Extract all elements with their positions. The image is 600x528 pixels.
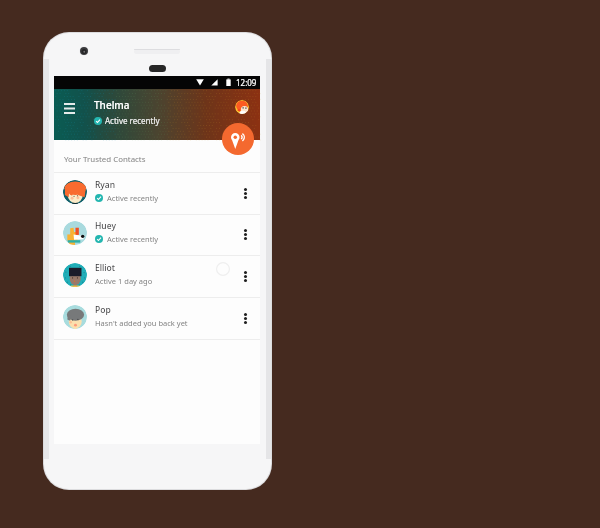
button[interactable]: Pop — [54, 298, 260, 339]
button[interactable]: Profile — [235, 100, 249, 114]
staticText: Pop — [95, 304, 111, 316]
staticText: Active recently — [107, 193, 159, 203]
button[interactable]: Huey — [54, 215, 260, 255]
staticText: 12:09 — [236, 77, 257, 88]
button[interactable]: Elliot — [54, 256, 260, 297]
staticText: Ryan — [95, 179, 116, 191]
staticText: Elliot — [95, 262, 116, 274]
button[interactable]: More options — [236, 177, 254, 209]
staticText: Active recently — [107, 234, 159, 244]
staticText: Hasn't added you back yet — [95, 318, 188, 328]
button[interactable]: More options — [236, 260, 254, 292]
staticText: Active 1 day ago — [95, 276, 153, 286]
staticText: Active recently — [105, 115, 160, 126]
button[interactable]: Ryan — [54, 173, 260, 214]
button[interactable]: More options — [236, 302, 254, 334]
button[interactable]: Share location — [222, 123, 254, 155]
button[interactable]: Menu — [59, 98, 80, 119]
staticText: Thelma — [94, 98, 130, 112]
button[interactable]: More options — [236, 218, 254, 250]
staticText: Your Trusted Contacts — [64, 154, 146, 165]
staticText: Huey — [95, 220, 116, 232]
